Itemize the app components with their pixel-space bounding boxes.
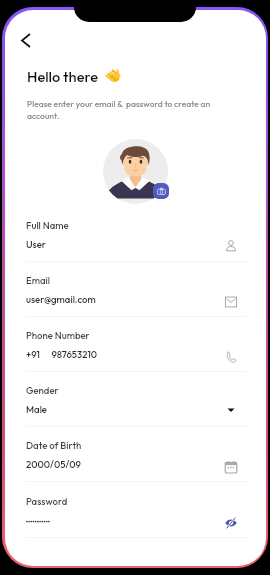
staticText: User — [26, 238, 46, 250]
button[interactable]: Gender — [26, 382, 247, 430]
staticText: Hello there — [27, 67, 98, 85]
staticText: Date of Birth — [26, 439, 82, 451]
staticText: Male — [26, 403, 47, 415]
button[interactable]: Back — [13, 27, 39, 53]
staticText: Please enter your email & password to cr… — [27, 98, 243, 121]
staticText: 2000/05/09 — [26, 458, 81, 470]
button[interactable]: Change profile photo — [103, 139, 174, 205]
staticText: user@gmail.com — [26, 293, 96, 305]
button[interactable]: Full Name — [26, 217, 247, 265]
button[interactable]: Phone Number — [26, 327, 247, 375]
staticText: Phone Number — [26, 329, 90, 341]
staticText: Email — [26, 274, 50, 286]
staticText: Gender — [26, 384, 59, 396]
staticText: Password — [26, 495, 68, 507]
staticText: +91 987653210 — [26, 348, 98, 360]
button[interactable]: Date of Birth — [26, 437, 247, 485]
button[interactable]: Password — [26, 493, 247, 541]
button[interactable]: Change profile photo — [153, 183, 169, 199]
button[interactable]: Email — [26, 272, 247, 320]
staticText: Full Name — [26, 219, 69, 231]
